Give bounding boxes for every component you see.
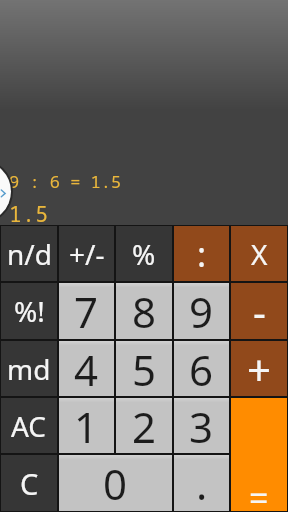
- button[interactable]: 0: [59, 455, 172, 511]
- button[interactable]: +: [231, 341, 287, 396]
- staticText: .: [196, 455, 208, 511]
- button[interactable]: :: [174, 226, 229, 281]
- button[interactable]: AC: [1, 398, 57, 453]
- staticText: 1.5: [9, 200, 49, 229]
- staticText: =: [249, 475, 269, 512]
- button[interactable]: 2: [116, 398, 172, 453]
- button[interactable]: %: [116, 226, 172, 281]
- button[interactable]: %!: [1, 283, 57, 339]
- button[interactable]: X: [231, 226, 287, 281]
- button[interactable]: .: [174, 455, 229, 511]
- staticText: C: [20, 464, 39, 503]
- staticText: 0: [103, 455, 128, 511]
- button[interactable]: [0, 160, 16, 222]
- staticText: 7: [74, 283, 99, 339]
- staticText: +: [247, 341, 272, 396]
- staticText: 4: [74, 341, 99, 396]
- staticText: :: [197, 231, 207, 277]
- button[interactable]: md: [1, 341, 57, 396]
- staticText: +/-: [69, 235, 105, 273]
- staticText: -: [253, 284, 266, 338]
- staticText: 2: [132, 398, 157, 453]
- button[interactable]: 9: [174, 283, 229, 339]
- staticText: X: [251, 235, 268, 273]
- button[interactable]: n/d: [1, 226, 57, 281]
- button[interactable]: -: [231, 283, 287, 339]
- button[interactable]: 7: [59, 283, 114, 339]
- staticText: AC: [11, 407, 47, 445]
- button[interactable]: 1: [59, 398, 114, 453]
- button[interactable]: C: [1, 455, 57, 511]
- button[interactable]: 5: [116, 341, 172, 396]
- button[interactable]: 6: [174, 341, 229, 396]
- staticText: 9 : 6 = 1.5: [9, 170, 122, 193]
- button[interactable]: 8: [116, 283, 172, 339]
- staticText: 5: [132, 341, 157, 396]
- staticText: %!: [14, 292, 45, 330]
- button[interactable]: 4: [59, 341, 114, 396]
- staticText: n/d: [7, 235, 52, 273]
- staticText: md: [7, 350, 51, 388]
- staticText: %: [132, 235, 156, 273]
- staticText: 6: [189, 341, 214, 396]
- button[interactable]: +/-: [59, 226, 114, 281]
- staticText: 8: [132, 283, 157, 339]
- staticText: 3: [189, 398, 214, 453]
- button[interactable]: 3: [174, 398, 229, 453]
- staticText: 9: [189, 283, 214, 339]
- staticText: 1: [74, 398, 99, 453]
- button[interactable]: =: [231, 398, 287, 511]
